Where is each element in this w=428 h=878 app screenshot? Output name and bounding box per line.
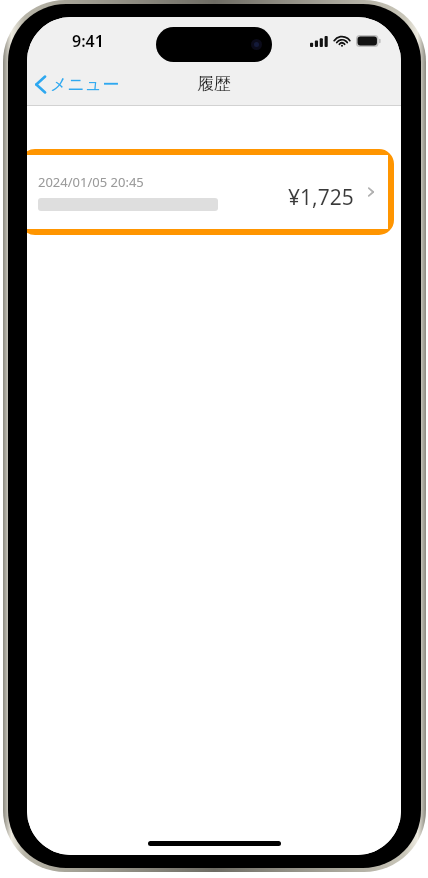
staticText: メニュー: [50, 74, 120, 95]
button[interactable]: メニュー: [27, 70, 128, 99]
button[interactable]: 2024/01/05 20:45: [27, 155, 388, 229]
staticText: 履歴: [197, 73, 231, 94]
staticText: 2024/01/05 20:45: [38, 173, 144, 191]
staticText: 9:41: [72, 30, 104, 52]
staticText: ¥1,725: [288, 183, 354, 212]
